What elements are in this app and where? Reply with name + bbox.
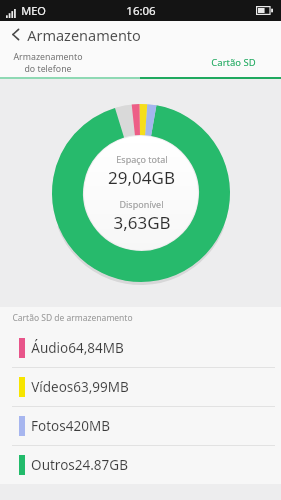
button[interactable]: Back xyxy=(0,21,281,48)
staticText: Espaço total xyxy=(116,153,168,165)
button[interactable]: Áudio64,84MB xyxy=(0,329,281,367)
staticText: Fotos420MB xyxy=(31,417,110,435)
button[interactable]: Cartão SD xyxy=(185,48,281,77)
staticText: Cartão SD xyxy=(211,56,256,69)
staticText: Vídeos63,99MB xyxy=(31,378,129,396)
staticText: Disponível xyxy=(119,198,164,210)
staticText: 16:06 xyxy=(126,3,156,19)
button[interactable]: Outros24.87GB xyxy=(0,446,281,484)
staticText: Armazenamento xyxy=(27,25,141,45)
staticText: 29,04GB xyxy=(108,166,175,189)
button[interactable]: Armazenamento xyxy=(0,48,96,77)
staticText: Áudio64,84MB xyxy=(31,339,124,357)
button[interactable]: Vídeos63,99MB xyxy=(0,368,281,406)
staticText: 3,63GB xyxy=(113,211,171,234)
staticText: MEO xyxy=(21,3,46,18)
staticText: Cartão SD de armazenamento xyxy=(12,312,133,324)
staticText: do telefone xyxy=(24,63,72,75)
staticText: Outros24.87GB xyxy=(31,456,128,474)
staticText: Armazenamento xyxy=(13,51,83,63)
button[interactable]: Fotos420MB xyxy=(0,407,281,445)
